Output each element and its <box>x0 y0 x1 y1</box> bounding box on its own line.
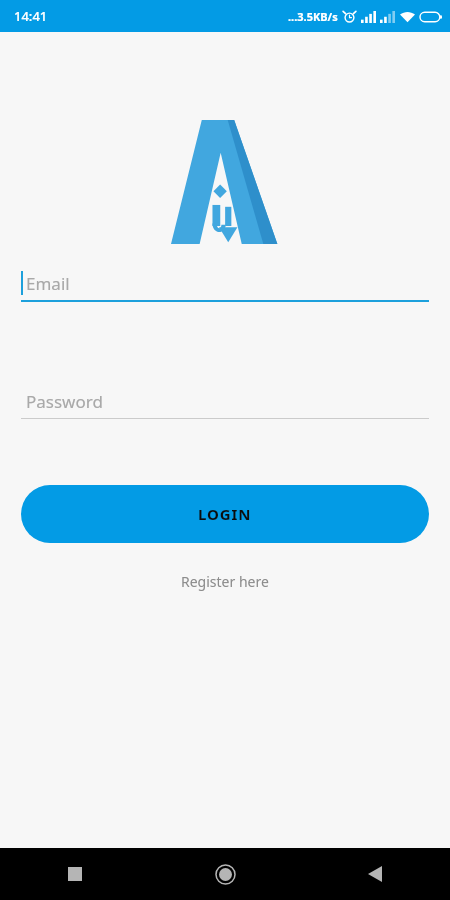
button[interactable]: Home <box>150 848 300 900</box>
button[interactable]: Register here <box>169 567 281 596</box>
button[interactable]: Recent apps <box>0 848 150 900</box>
button[interactable]: Password <box>21 384 429 419</box>
button[interactable]: Email <box>21 266 429 302</box>
staticText: ...3.5KB/s <box>288 9 338 24</box>
staticText: 14:41 <box>14 7 48 25</box>
staticText: Email <box>26 272 70 295</box>
staticText: Password <box>26 390 103 413</box>
button[interactable]: Back <box>300 848 450 900</box>
staticText: LOGIN <box>198 504 252 524</box>
staticText: Register here <box>181 572 269 591</box>
button[interactable]: LOGIN <box>21 485 429 543</box>
